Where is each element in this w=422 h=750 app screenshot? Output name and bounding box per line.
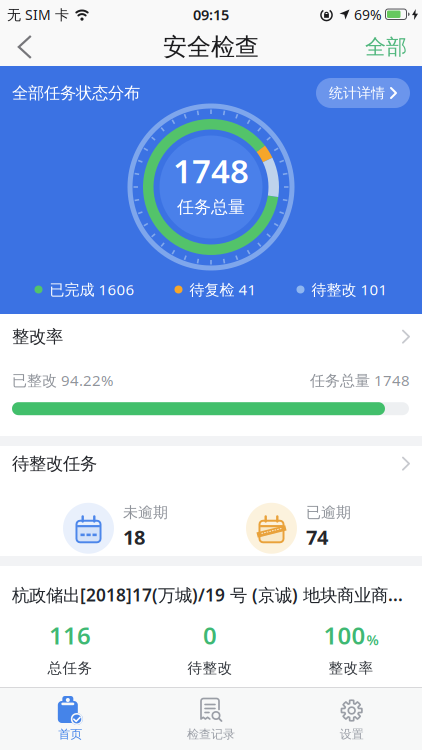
button[interactable]: 设置 [281,688,422,742]
staticText: 首页 [58,727,82,742]
staticText: 69% [354,5,382,24]
staticText: 无 SIM 卡 [7,5,69,24]
staticText: 全部 [365,34,407,60]
staticText: 74 [306,524,328,550]
staticText: 统计详情 [329,84,385,102]
staticText: 待复检 41 [189,279,256,299]
staticText: 整改率 [328,659,373,677]
button[interactable]: 杭政储出[2018]17(万城)/19 号 (京诚) 地块商业商务项目 [0,566,422,687]
staticText: 任务总量 1748 [310,370,410,390]
staticText: 1748 [173,149,249,192]
staticText: 整改率 [12,326,63,347]
button[interactable]: 待整改任务 [0,446,422,556]
button[interactable]: 统计详情 [316,78,410,108]
button[interactable]: 首页 [0,688,141,742]
staticText: 已完成 1606 [49,279,134,299]
staticText: 全部任务状态分布 [12,83,140,103]
staticText: 已逾期 [306,503,351,522]
button[interactable]: Back [0,30,32,64]
button[interactable]: 全部 [365,30,422,64]
staticText: 09:15 [193,5,229,24]
staticText: 116 [49,619,91,651]
staticText: 待整改任务 [12,453,97,474]
staticText: 已整改 94.22% [12,370,113,390]
staticText: 100 [323,619,365,651]
staticText: 安全检查 [163,32,259,62]
staticText: 0 [203,619,217,651]
button[interactable]: 整改率 [0,314,422,436]
staticText: 杭政储出[2018]17(万城)/19 号 (京诚) 地块商业商务项目 [12,583,416,606]
staticText: 待整改 101 [311,279,387,299]
staticText: % [366,630,378,649]
staticText: 待整改 [187,659,232,677]
staticText: 18 [123,524,145,550]
staticText: 任务总量 [177,197,245,217]
staticText: 总任务 [47,659,92,677]
button[interactable]: 检查记录 [141,688,281,742]
staticText: 设置 [340,727,364,742]
staticText: 未逾期 [123,503,168,522]
staticText: 检查记录 [187,727,235,742]
